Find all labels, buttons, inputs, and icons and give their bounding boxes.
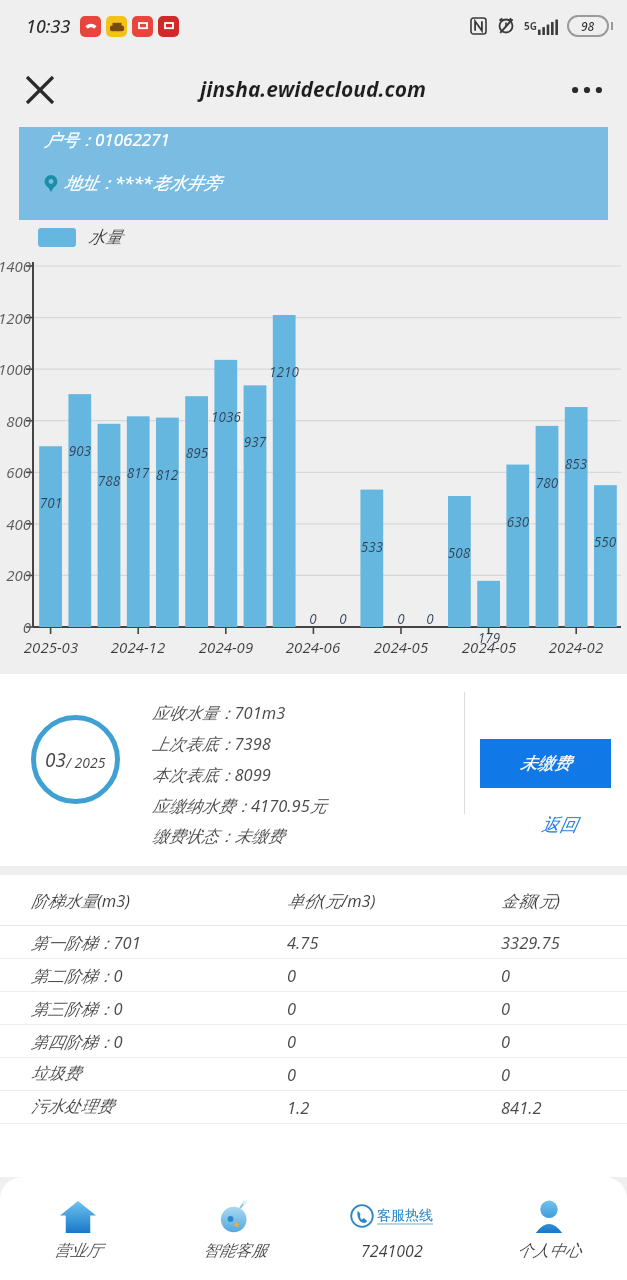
- button[interactable]: 营业厅: [0, 1177, 156, 1280]
- staticText: 533: [350, 538, 394, 556]
- button[interactable]: 污水处理费: [0, 1091, 627, 1123]
- staticText: 阶梯水量(m3): [31, 889, 131, 912]
- staticText: 10:33: [26, 14, 71, 39]
- staticText: 1036: [204, 408, 248, 426]
- staticText: 5G: [524, 19, 537, 33]
- staticText: jinsha.ewidecloud.com: [200, 75, 427, 104]
- staticText: 客服热线: [377, 1207, 433, 1225]
- staticText: 3329.75: [501, 931, 560, 953]
- staticText: 1400: [0, 256, 31, 276]
- staticText: 841.2: [501, 1096, 542, 1118]
- staticText: 0: [379, 610, 423, 628]
- staticText: 895: [175, 444, 219, 462]
- staticText: 0: [501, 1063, 511, 1085]
- staticText: 本次表底：8099: [152, 763, 271, 786]
- staticText: 812: [145, 466, 189, 484]
- staticText: 600: [0, 462, 31, 482]
- button[interactable]: 智能客服: [156, 1177, 313, 1280]
- staticText: 630: [496, 513, 540, 531]
- staticText: 智能客服: [203, 1241, 267, 1261]
- staticText: 户号：01062271: [44, 128, 170, 151]
- staticText: 1000: [0, 359, 31, 379]
- staticText: 701: [29, 494, 73, 512]
- staticText: 2024-09: [184, 637, 268, 657]
- button[interactable]: 返回: [520, 807, 598, 843]
- staticText: 98: [581, 18, 595, 34]
- staticText: 单价(元/m3): [287, 889, 376, 912]
- staticText: 937: [233, 433, 277, 451]
- staticText: 0: [291, 610, 335, 628]
- staticText: 0: [287, 1063, 297, 1085]
- staticText: 污水处理费: [31, 1096, 114, 1117]
- staticText: 营业厅: [54, 1241, 102, 1261]
- staticText: 788: [87, 472, 131, 490]
- button[interactable]: Close: [12, 62, 68, 118]
- staticText: 0: [287, 1030, 297, 1052]
- staticText: 2024-05: [447, 637, 531, 657]
- staticText: 2025-03: [9, 637, 93, 657]
- button[interactable]: 客服热线: [313, 1177, 470, 1280]
- button[interactable]: 第二阶梯：0: [0, 959, 627, 991]
- staticText: 0: [501, 997, 511, 1019]
- staticText: 1210: [262, 363, 306, 381]
- staticText: 800: [0, 411, 31, 431]
- staticText: 903: [58, 442, 102, 460]
- staticText: 金额(元): [501, 889, 561, 912]
- staticText: 780: [525, 474, 569, 492]
- staticText: 0: [501, 1030, 511, 1052]
- staticText: 179: [467, 629, 511, 647]
- staticText: 地址：****老水井旁: [64, 171, 221, 194]
- staticText: 第三阶梯：0: [31, 997, 123, 1020]
- button[interactable]: 第四阶梯：0: [0, 1025, 627, 1057]
- staticText: 853: [554, 455, 598, 473]
- staticText: 水量: [88, 227, 122, 248]
- staticText: 0: [321, 610, 365, 628]
- staticText: 缴费状态：未缴费: [152, 826, 284, 847]
- staticText: 817: [116, 464, 160, 482]
- staticText: 0: [287, 997, 297, 1019]
- staticText: 0: [408, 610, 452, 628]
- staticText: 2024-02: [534, 637, 618, 657]
- staticText: 垃圾费: [31, 1063, 81, 1084]
- staticText: 第二阶梯：0: [31, 964, 123, 987]
- staticText: 2024-06: [271, 637, 355, 657]
- staticText: 1200: [0, 308, 31, 328]
- button[interactable]: 个人中心: [470, 1177, 627, 1280]
- staticText: 上次表底：7398: [152, 732, 271, 755]
- button[interactable]: 第三阶梯：0: [0, 992, 627, 1024]
- staticText: 200: [0, 565, 31, 585]
- staticText: 第四阶梯：0: [31, 1030, 123, 1053]
- staticText: 返回: [541, 814, 577, 837]
- staticText: 0: [501, 964, 511, 986]
- staticText: 2024-05: [359, 637, 443, 657]
- staticText: 1.2: [287, 1096, 310, 1118]
- staticText: 2024-12: [96, 637, 180, 657]
- staticText: / 2025: [66, 753, 106, 772]
- staticText: 400: [0, 514, 31, 534]
- button[interactable]: 垃圾费: [0, 1058, 627, 1090]
- staticText: 未缴费: [520, 753, 571, 774]
- staticText: 508: [437, 544, 481, 562]
- button[interactable]: 第一阶梯：701: [0, 926, 627, 958]
- button[interactable]: 未缴费: [480, 739, 611, 788]
- staticText: 4.75: [287, 931, 319, 953]
- staticText: 个人中心: [517, 1241, 581, 1261]
- button[interactable]: More options: [559, 62, 615, 118]
- staticText: 第一阶梯：701: [31, 931, 141, 954]
- staticText: 0: [0, 617, 31, 637]
- staticText: 7241002: [361, 1240, 423, 1262]
- staticText: 应缴纳水费：4170.95元: [152, 794, 327, 817]
- staticText: 03: [45, 747, 66, 773]
- staticText: 0: [287, 964, 297, 986]
- staticText: 550: [583, 533, 627, 551]
- staticText: 应收水量：701m3: [152, 701, 286, 724]
